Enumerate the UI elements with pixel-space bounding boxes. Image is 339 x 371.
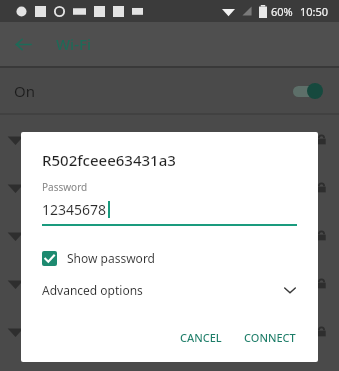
button[interactable]: Back: [8, 29, 38, 59]
staticText: CANCEL: [180, 330, 222, 345]
staticText: Advanced options: [42, 282, 143, 298]
staticText: 10:50: [300, 4, 329, 19]
staticText: Wi-Fi: [56, 34, 91, 54]
staticText: Password: [42, 180, 88, 194]
button[interactable]: CANCEL: [172, 323, 230, 352]
button[interactable]: On: [0, 68, 339, 113]
button[interactable]: Advanced options: [42, 282, 297, 298]
staticText: Show password: [67, 250, 155, 266]
staticText: 60%: [271, 4, 293, 19]
staticText: CONNECT: [244, 330, 296, 345]
staticText: 12345678: [42, 200, 107, 219]
button[interactable]: 12345678: [42, 200, 297, 219]
button[interactable]: CONNECT: [236, 323, 304, 352]
button[interactable]: Show password: [42, 250, 297, 266]
staticText: On: [14, 81, 35, 101]
staticText: R502fceee63431a3: [42, 150, 176, 170]
